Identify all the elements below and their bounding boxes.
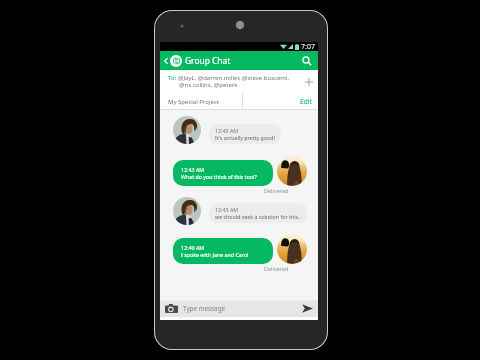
staticText: My Special Project [168, 98, 219, 106]
staticText: we should seek a solution for this.. [215, 213, 301, 220]
staticText: 7:07 [301, 42, 315, 51]
button[interactable]: 12:45 AM [209, 124, 281, 144]
button[interactable]: Back [164, 55, 168, 67]
staticText: 12:43 AM [181, 166, 205, 173]
staticText: 12:43 AM [215, 206, 239, 213]
button[interactable]: Camera [165, 304, 178, 313]
staticText: Group Chat [185, 55, 231, 66]
staticText: To: [168, 74, 177, 82]
staticText: @ris.collins, @peterk [179, 81, 238, 89]
staticText: I spoke with Jane and Carol [181, 251, 249, 258]
button[interactable]: Search [299, 53, 315, 69]
staticText: 12:40 AM [181, 244, 205, 251]
staticText: Type message [183, 304, 226, 313]
staticText: 12:45 AM [215, 127, 239, 134]
button[interactable]: 12:43 AM [173, 160, 273, 186]
button[interactable]: 12:43 AM [209, 203, 307, 223]
staticText: What do you think of this tool? [181, 173, 257, 180]
button[interactable]: Edit [293, 93, 318, 110]
button[interactable]: To: [160, 70, 318, 93]
staticText: Delivered [264, 187, 289, 194]
staticText: Edit [300, 97, 312, 106]
button[interactable] [160, 300, 318, 317]
button[interactable]: Send [300, 301, 315, 316]
staticText: It's actually pretty good! [215, 134, 275, 141]
staticText: @JayL, @darren.miller, @steve.buscemi, [178, 74, 290, 82]
button[interactable]: Add recipient [302, 75, 315, 88]
button[interactable]: 12:40 AM [173, 238, 273, 264]
staticText: Delivered [264, 265, 289, 272]
